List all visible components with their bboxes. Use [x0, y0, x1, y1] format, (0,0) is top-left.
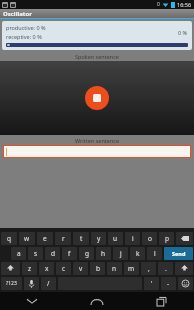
staticText: a	[17, 249, 21, 258]
button[interactable]: q	[1, 232, 17, 245]
button[interactable]: Send	[164, 247, 193, 260]
button[interactable]: o	[142, 232, 157, 245]
button[interactable]: g	[79, 247, 94, 260]
button[interactable]: Home	[64, 292, 129, 310]
button[interactable]: w	[19, 232, 35, 245]
button[interactable]: j	[113, 247, 128, 260]
staticText: 16:56	[177, 1, 192, 8]
staticText: f	[68, 249, 71, 258]
staticText: y	[97, 234, 101, 243]
button[interactable]: '	[144, 277, 159, 290]
button[interactable]: p	[159, 232, 174, 245]
staticText: v	[79, 264, 83, 273]
button[interactable]: Voice input	[24, 277, 39, 290]
staticText: 0	[157, 1, 160, 8]
button[interactable]: d	[45, 247, 60, 260]
staticText: h	[101, 249, 106, 258]
button[interactable]: a	[11, 247, 26, 260]
button[interactable]: Backspace	[176, 232, 193, 245]
staticText: j	[120, 249, 122, 258]
staticText: g	[85, 249, 89, 258]
button[interactable]: y	[91, 232, 106, 245]
button[interactable]: t	[73, 232, 89, 245]
staticText: Written sentence	[75, 137, 120, 144]
staticText: receptive: 0 %	[6, 33, 42, 40]
button[interactable]: n	[107, 262, 122, 275]
staticText: l	[154, 249, 156, 258]
button[interactable]: e	[37, 232, 53, 245]
button[interactable]: ?123	[1, 277, 22, 290]
staticText: k	[136, 249, 140, 258]
staticText: ,	[148, 264, 150, 273]
staticText: b	[96, 264, 100, 273]
button[interactable]	[4, 146, 190, 157]
button[interactable]: .	[158, 262, 173, 275]
button[interactable]: Back	[0, 292, 64, 310]
button[interactable]: f	[62, 247, 77, 260]
staticText: /	[47, 279, 50, 288]
staticText: ?123	[6, 280, 17, 287]
staticText: '	[151, 279, 153, 288]
button[interactable]: b	[90, 262, 105, 275]
button[interactable]: c	[56, 262, 71, 275]
staticText: Oscillator	[3, 10, 32, 18]
staticText: 0 %	[178, 29, 188, 36]
button[interactable]: Shift	[175, 262, 193, 275]
button[interactable]: Stop recording	[85, 86, 109, 110]
button[interactable]: z	[22, 262, 37, 275]
staticText: e	[43, 234, 47, 243]
button[interactable]: v	[73, 262, 88, 275]
staticText: m	[128, 264, 135, 273]
staticText: Spoken sentence	[75, 53, 119, 60]
staticText: s	[34, 249, 38, 258]
staticText: d	[51, 249, 55, 258]
staticText: r	[62, 234, 65, 243]
button[interactable]: r	[55, 232, 71, 245]
staticText: x	[45, 264, 49, 273]
button[interactable]: /	[41, 277, 56, 290]
button[interactable]: s	[28, 247, 43, 260]
staticText: Send	[172, 250, 186, 257]
button[interactable]: x	[39, 262, 54, 275]
button[interactable]: i	[125, 232, 140, 245]
button[interactable]: m	[124, 262, 139, 275]
staticText: w	[24, 234, 30, 243]
button[interactable]: Emoji	[178, 277, 193, 290]
button[interactable]: k	[130, 247, 145, 260]
staticText: p	[165, 234, 169, 243]
button[interactable]: l	[147, 247, 162, 260]
staticText: -	[167, 279, 170, 288]
staticText: q	[7, 234, 11, 243]
staticText: c	[62, 264, 66, 273]
button[interactable]: -	[161, 277, 176, 290]
staticText: t	[80, 234, 83, 243]
button[interactable]: h	[96, 247, 111, 260]
button[interactable]: u	[108, 232, 123, 245]
staticText: .	[165, 264, 167, 273]
button[interactable]: Shift	[1, 262, 20, 275]
staticText: n	[112, 264, 117, 273]
staticText: z	[28, 264, 32, 273]
staticText: productive: 0 %	[6, 24, 46, 31]
staticText: u	[113, 234, 118, 243]
button[interactable]: ,	[141, 262, 156, 275]
staticText: o	[148, 234, 152, 243]
staticText: i	[132, 234, 134, 243]
button[interactable]: Recent apps	[129, 292, 194, 310]
